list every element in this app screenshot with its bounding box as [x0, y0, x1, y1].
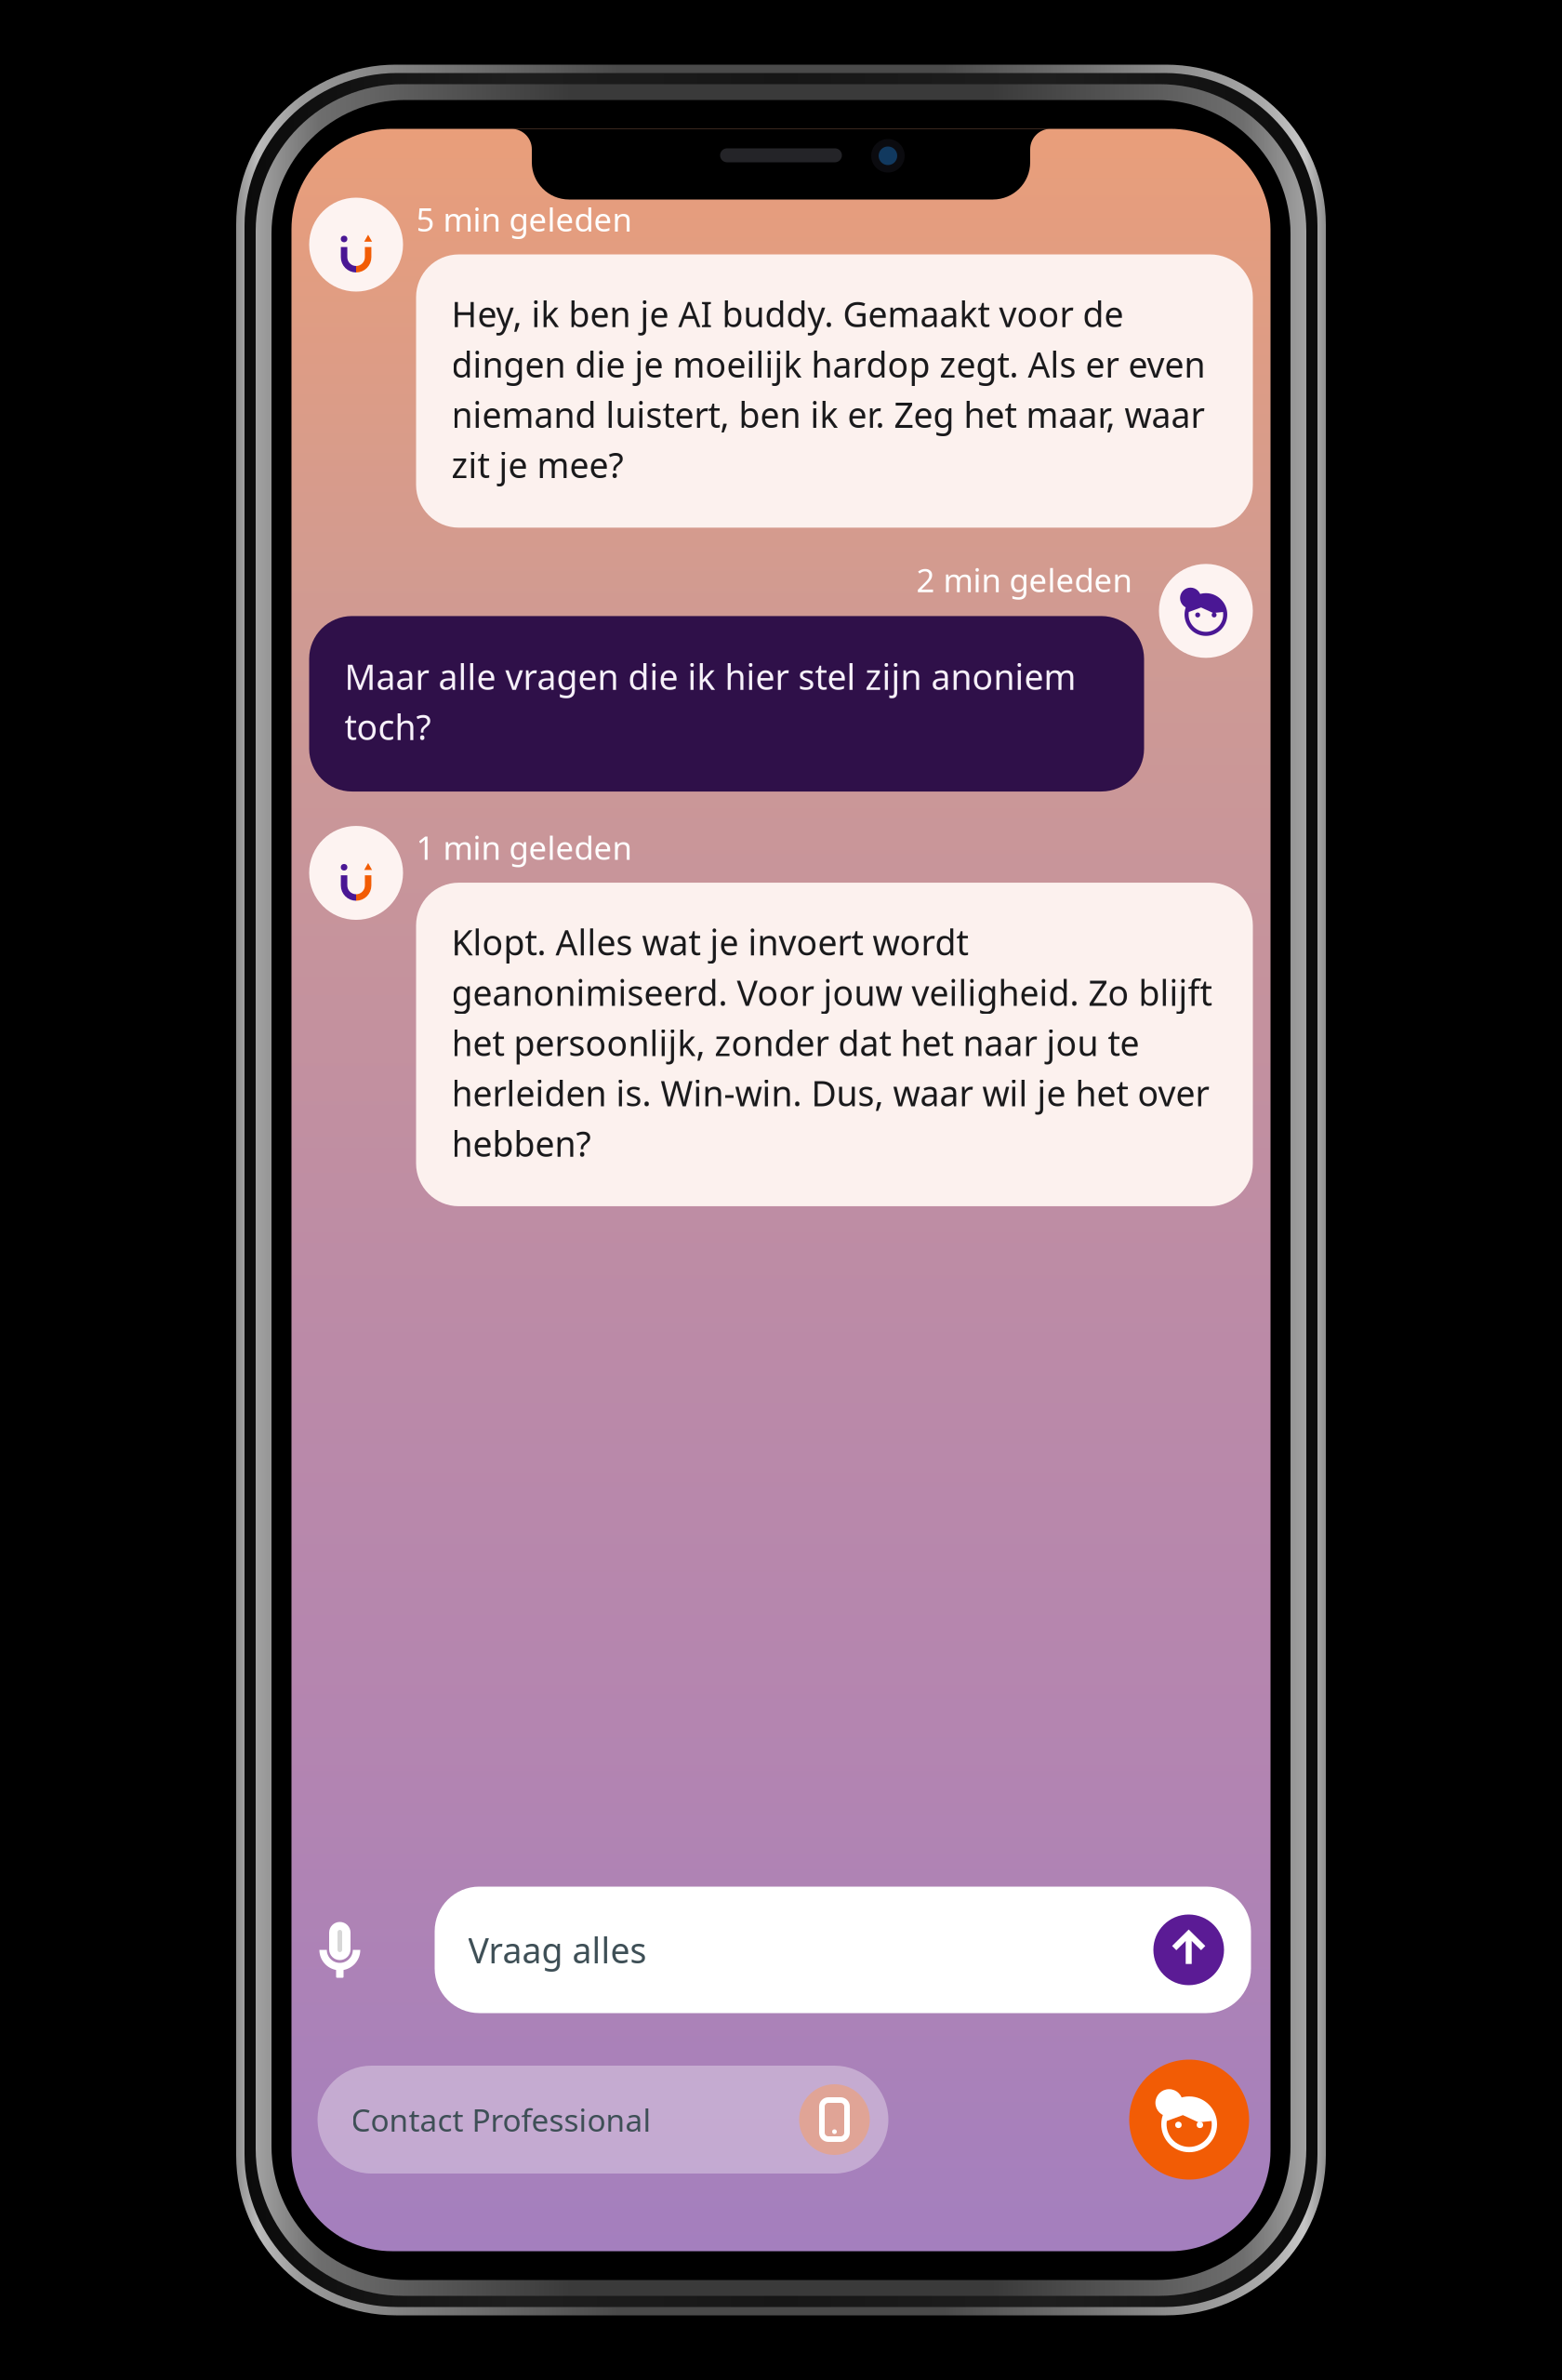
button[interactable]: Vraag alles	[435, 1887, 1251, 2013]
staticText: 1 min geleden	[416, 826, 632, 869]
button[interactable]: Profile	[1129, 2060, 1249, 2180]
staticText: Vraag alles	[468, 1927, 647, 1973]
staticText: Maar alle vragen die ik hier stel zijn a…	[344, 653, 1076, 750]
staticText: Contact Professional	[351, 2099, 651, 2140]
staticText: Hey, ik ben je AI buddy. Gemaakt voor de…	[451, 291, 1205, 488]
staticText: 2 min geleden	[916, 558, 1132, 601]
staticText: Klopt. Alles wat je invoert wordt geanon…	[451, 919, 1212, 1166]
button[interactable]: Voice input	[304, 1887, 376, 2013]
staticText: 5 min geleden	[416, 198, 632, 240]
button[interactable]: Contact Professional	[318, 2066, 888, 2174]
